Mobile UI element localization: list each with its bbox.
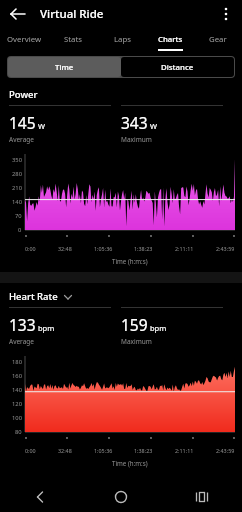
button[interactable]: Laps	[98, 28, 146, 51]
staticText: 32:48	[58, 245, 72, 252]
staticText: 2:43:59	[216, 447, 235, 454]
staticText: 180	[12, 358, 22, 366]
staticText: bpm	[150, 323, 167, 333]
staticText: W	[38, 121, 45, 131]
staticText: 1:38:23	[134, 447, 153, 454]
staticText: 80	[15, 428, 22, 436]
staticText: 140	[12, 198, 22, 206]
staticText: Heart Rate	[9, 290, 58, 303]
staticText: 1:05:36	[94, 245, 113, 252]
staticText: 0	[18, 226, 22, 234]
staticText: Distance	[161, 62, 194, 73]
button[interactable]: Time	[8, 57, 121, 77]
staticText: 32:48	[58, 447, 72, 454]
staticText: Power	[9, 88, 38, 101]
staticText: Time (h:m:s)	[112, 459, 148, 467]
staticText: 350	[12, 156, 22, 164]
staticText: 343	[121, 112, 148, 133]
staticText: 0:00	[25, 447, 36, 454]
staticText: Gear	[209, 34, 227, 45]
button[interactable]: Home	[80, 482, 161, 512]
button[interactable]: Back	[5, 1, 31, 27]
staticText: 1:38:23	[134, 245, 153, 252]
staticText: W	[150, 121, 157, 131]
staticText: 210	[12, 184, 22, 192]
staticText: Average	[9, 135, 34, 144]
button[interactable]: Distance	[121, 57, 234, 77]
button[interactable]: Overview	[0, 28, 49, 51]
button[interactable]: Stats	[49, 28, 98, 51]
staticText: 159	[121, 314, 148, 335]
staticText: 145	[9, 112, 36, 133]
staticText: Time	[55, 62, 74, 73]
staticText: Charts	[158, 34, 183, 45]
staticText: Time (h:m:s)	[112, 257, 148, 265]
button[interactable]: Gear	[194, 28, 242, 51]
staticText: 2:43:59	[216, 245, 235, 252]
staticText: 120	[12, 400, 22, 408]
staticText: 0:00	[25, 245, 36, 252]
button[interactable]: Back	[0, 482, 80, 512]
button[interactable]: Recent apps	[161, 482, 242, 512]
staticText: Maximum	[121, 337, 152, 346]
staticText: 2:11:11	[175, 447, 194, 454]
staticText: Average	[9, 337, 34, 346]
staticText: 70	[15, 212, 22, 220]
staticText: 133	[9, 314, 36, 335]
staticText: Laps	[114, 34, 131, 45]
staticText: 140	[12, 386, 22, 394]
staticText: Virtual Ride	[40, 6, 104, 22]
staticText: 1:05:36	[94, 447, 113, 454]
staticText: Stats	[64, 34, 83, 45]
staticText: 2:11:11	[175, 245, 194, 252]
button[interactable]: More options	[214, 2, 238, 26]
staticText: Maximum	[121, 135, 152, 144]
staticText: Overview	[7, 34, 42, 45]
staticText: 280	[12, 170, 22, 178]
staticText: 160	[12, 372, 22, 380]
staticText: 100	[12, 414, 22, 422]
button[interactable]: Charts	[146, 28, 194, 51]
staticText: bpm	[38, 323, 55, 333]
